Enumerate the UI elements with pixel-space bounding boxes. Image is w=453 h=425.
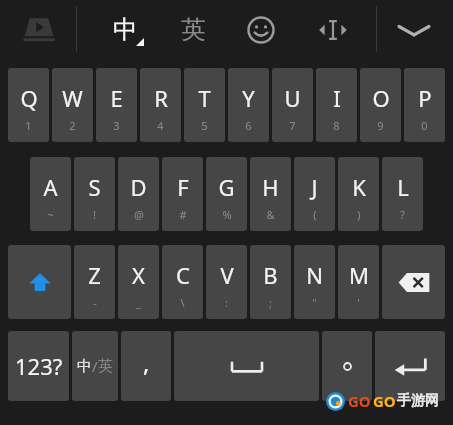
- button[interactable]: O: [360, 68, 401, 142]
- staticText: 8: [333, 118, 340, 133]
- staticText: Z: [88, 260, 101, 290]
- button[interactable]: 英: [168, 6, 218, 52]
- staticText: 英: [181, 14, 206, 45]
- button[interactable]: M: [338, 245, 379, 319]
- staticText: 4: [157, 118, 164, 133]
- staticText: %: [222, 207, 232, 222]
- button[interactable]: X: [118, 245, 159, 319]
- button[interactable]: E: [96, 68, 137, 142]
- button[interactable]: R: [140, 68, 181, 142]
- button[interactable]: Hide keyboard: [390, 7, 438, 53]
- staticText: F: [177, 172, 189, 202]
- staticText: GO: [373, 391, 396, 411]
- button[interactable]: ,: [121, 331, 171, 401]
- button[interactable]: C: [162, 245, 203, 319]
- staticText: @: [134, 207, 144, 222]
- staticText: ~: [47, 207, 54, 222]
- staticText: L: [397, 172, 409, 202]
- staticText: 1: [25, 118, 32, 133]
- staticText: I: [333, 83, 341, 113]
- button[interactable]: D: [118, 157, 159, 231]
- staticText: 中: [77, 357, 92, 376]
- button[interactable]: P: [404, 68, 445, 142]
- staticText: :: [225, 295, 228, 310]
- button[interactable]: Move cursor: [310, 7, 356, 53]
- button[interactable]: W: [52, 68, 93, 142]
- button[interactable]: 中: [72, 331, 118, 401]
- button[interactable]: Enter: [375, 331, 445, 401]
- button[interactable]: I: [316, 68, 357, 142]
- button[interactable]: Backspace: [382, 245, 445, 319]
- button[interactable]: S: [74, 157, 115, 231]
- staticText: /: [92, 356, 98, 376]
- staticText: K: [352, 172, 366, 202]
- staticText: N: [306, 260, 323, 290]
- button[interactable]: J: [294, 157, 335, 231]
- staticText: GO: [348, 391, 371, 411]
- staticText: -: [93, 295, 97, 310]
- staticText: !: [93, 207, 96, 222]
- staticText: V: [220, 260, 234, 290]
- staticText: B: [263, 260, 278, 290]
- button[interactable]: Y: [228, 68, 269, 142]
- staticText: P: [418, 83, 432, 113]
- button[interactable]: B: [250, 245, 291, 319]
- staticText: ;: [269, 295, 272, 310]
- button[interactable]: Shift: [8, 245, 71, 319]
- staticText: _: [136, 295, 141, 310]
- button[interactable]: Period: [322, 331, 372, 401]
- staticText: ": [312, 295, 317, 310]
- staticText: 5: [201, 118, 208, 133]
- staticText: ,: [143, 346, 150, 379]
- button[interactable]: Space: [174, 331, 319, 401]
- button[interactable]: U: [272, 68, 313, 142]
- staticText: X: [132, 260, 145, 290]
- button[interactable]: 中: [98, 6, 152, 52]
- staticText: U: [284, 83, 301, 113]
- button[interactable]: K: [338, 157, 379, 231]
- button[interactable]: L: [382, 157, 423, 231]
- button[interactable]: 123?: [8, 331, 69, 401]
- staticText: (: [313, 207, 317, 222]
- staticText: G: [218, 172, 235, 202]
- staticText: R: [154, 83, 168, 113]
- button[interactable]: A: [30, 157, 71, 231]
- staticText: \: [180, 295, 185, 310]
- button[interactable]: Q: [8, 68, 49, 142]
- staticText: C: [176, 260, 190, 290]
- button[interactable]: Input method logo: [17, 10, 61, 50]
- staticText: D: [130, 172, 147, 202]
- staticText: S: [88, 172, 101, 202]
- staticText: 6: [245, 118, 252, 133]
- staticText: T: [198, 83, 211, 113]
- staticText: Q: [20, 83, 38, 113]
- button[interactable]: Emoji: [238, 7, 284, 53]
- staticText: 中: [113, 14, 138, 45]
- staticText: 英: [98, 357, 113, 376]
- staticText: ?: [400, 207, 405, 222]
- button[interactable]: F: [162, 157, 203, 231]
- button[interactable]: N: [294, 245, 335, 319]
- staticText: 手游网: [397, 392, 439, 410]
- staticText: 9: [377, 118, 384, 133]
- staticText: W: [62, 83, 83, 113]
- staticText: ): [357, 207, 361, 222]
- staticText: 123?: [15, 351, 63, 381]
- button[interactable]: Z: [74, 245, 115, 319]
- staticText: A: [43, 172, 58, 202]
- staticText: #: [179, 207, 187, 222]
- button[interactable]: V: [206, 245, 247, 319]
- staticText: 3: [113, 118, 120, 133]
- staticText: ': [357, 295, 360, 310]
- staticText: 7: [289, 118, 296, 133]
- staticText: O: [372, 83, 390, 113]
- button[interactable]: T: [184, 68, 225, 142]
- staticText: H: [262, 172, 279, 202]
- button[interactable]: G: [206, 157, 247, 231]
- staticText: Y: [242, 83, 255, 113]
- staticText: E: [110, 83, 123, 113]
- staticText: &: [266, 207, 275, 222]
- button[interactable]: H: [250, 157, 291, 231]
- staticText: M: [349, 260, 369, 290]
- staticText: 2: [69, 118, 76, 133]
